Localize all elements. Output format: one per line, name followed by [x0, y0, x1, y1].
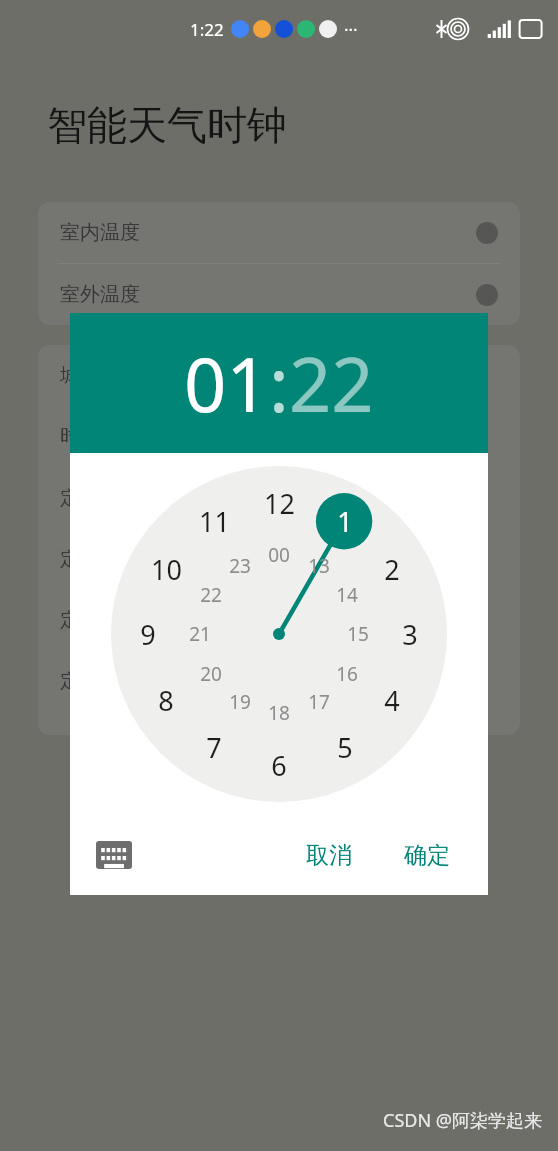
staticText: 00	[268, 542, 290, 568]
staticText: 2	[384, 551, 400, 588]
staticText: CSDN @阿柒学起来	[383, 1108, 542, 1133]
staticText: 室内温度	[60, 220, 140, 245]
staticText: 定时器1	[60, 484, 132, 511]
button[interactable]: 室内温度	[38, 202, 520, 263]
button[interactable]: 4	[371, 679, 413, 721]
button[interactable]: 室外温度	[38, 264, 520, 325]
staticText: 16	[336, 661, 358, 687]
button[interactable]: 取消	[294, 831, 364, 880]
button[interactable]: 定时器3	[38, 589, 520, 650]
button[interactable]: 22	[190, 574, 232, 616]
staticText: 8	[158, 682, 174, 719]
staticText: ···	[344, 18, 358, 41]
button[interactable]: 定时器4	[38, 650, 520, 711]
staticText: 12	[264, 485, 295, 522]
staticText: 3	[402, 616, 418, 653]
staticText: 5	[337, 729, 353, 766]
button[interactable]: 确定	[392, 831, 462, 880]
staticText: 定时器2	[60, 545, 132, 572]
staticText: 时区	[60, 424, 100, 449]
button[interactable]: 20	[190, 653, 232, 695]
button[interactable]: 13	[298, 545, 340, 587]
button[interactable]: 1	[324, 500, 366, 542]
button[interactable]: 22	[289, 333, 374, 434]
button[interactable]: 16	[326, 653, 368, 695]
staticText: 定时器4	[60, 667, 132, 694]
staticText: 23	[229, 553, 251, 579]
staticText: 9	[140, 616, 156, 653]
button[interactable]: 21	[179, 613, 221, 655]
button[interactable]: 12	[258, 482, 300, 524]
button[interactable]: 10	[145, 548, 187, 590]
staticText: 室外温度	[60, 282, 140, 307]
staticText: 22	[200, 582, 222, 608]
staticText: 17	[308, 689, 330, 715]
button[interactable]: 城市	[38, 345, 520, 406]
button[interactable]: 6	[258, 744, 300, 786]
staticText: :	[269, 333, 289, 434]
staticText: 07:00	[282, 484, 334, 511]
button[interactable]: 18	[258, 692, 300, 734]
button[interactable]: 15	[337, 613, 379, 655]
button[interactable]: 5	[324, 726, 366, 768]
staticText: 1:22	[190, 18, 224, 41]
button[interactable]: 7	[193, 726, 235, 768]
button[interactable]: 8	[145, 679, 187, 721]
staticText: 定时器3	[60, 606, 132, 633]
button[interactable]: 定时器2	[38, 528, 520, 589]
button[interactable]: Switch to text input	[96, 841, 132, 869]
button[interactable]: 01	[184, 333, 269, 434]
staticText: 智能天气时钟	[47, 100, 287, 150]
staticText: 18:00	[282, 606, 334, 633]
staticText: 4	[384, 682, 400, 719]
button[interactable]: 2	[371, 548, 413, 590]
staticText: 北京	[250, 363, 290, 388]
staticText: 14	[336, 582, 358, 608]
staticText: 7	[206, 729, 222, 766]
staticText: 19	[229, 689, 251, 715]
staticText: 12:30	[282, 545, 334, 572]
staticText: 15	[347, 621, 369, 647]
button[interactable]: 19	[219, 681, 261, 723]
button[interactable]: 00	[258, 534, 300, 576]
button[interactable]: 23	[219, 545, 261, 587]
staticText: 13	[308, 553, 330, 579]
staticText: 6	[271, 747, 287, 784]
button[interactable]: 14	[326, 574, 368, 616]
staticText: 1	[337, 503, 353, 540]
button[interactable]: 9	[127, 613, 169, 655]
staticText: 10	[151, 551, 182, 588]
staticText: 20	[200, 661, 222, 687]
button[interactable]: 11	[193, 500, 235, 542]
button[interactable]: 时区	[38, 406, 520, 467]
button[interactable]: 定时器1	[38, 467, 520, 528]
staticText: 18	[268, 700, 290, 726]
staticText: 城市	[60, 363, 100, 388]
button[interactable]: 3	[389, 613, 431, 655]
staticText: 11	[199, 503, 230, 540]
staticText: 21	[189, 621, 211, 647]
button[interactable]: 17	[298, 681, 340, 723]
